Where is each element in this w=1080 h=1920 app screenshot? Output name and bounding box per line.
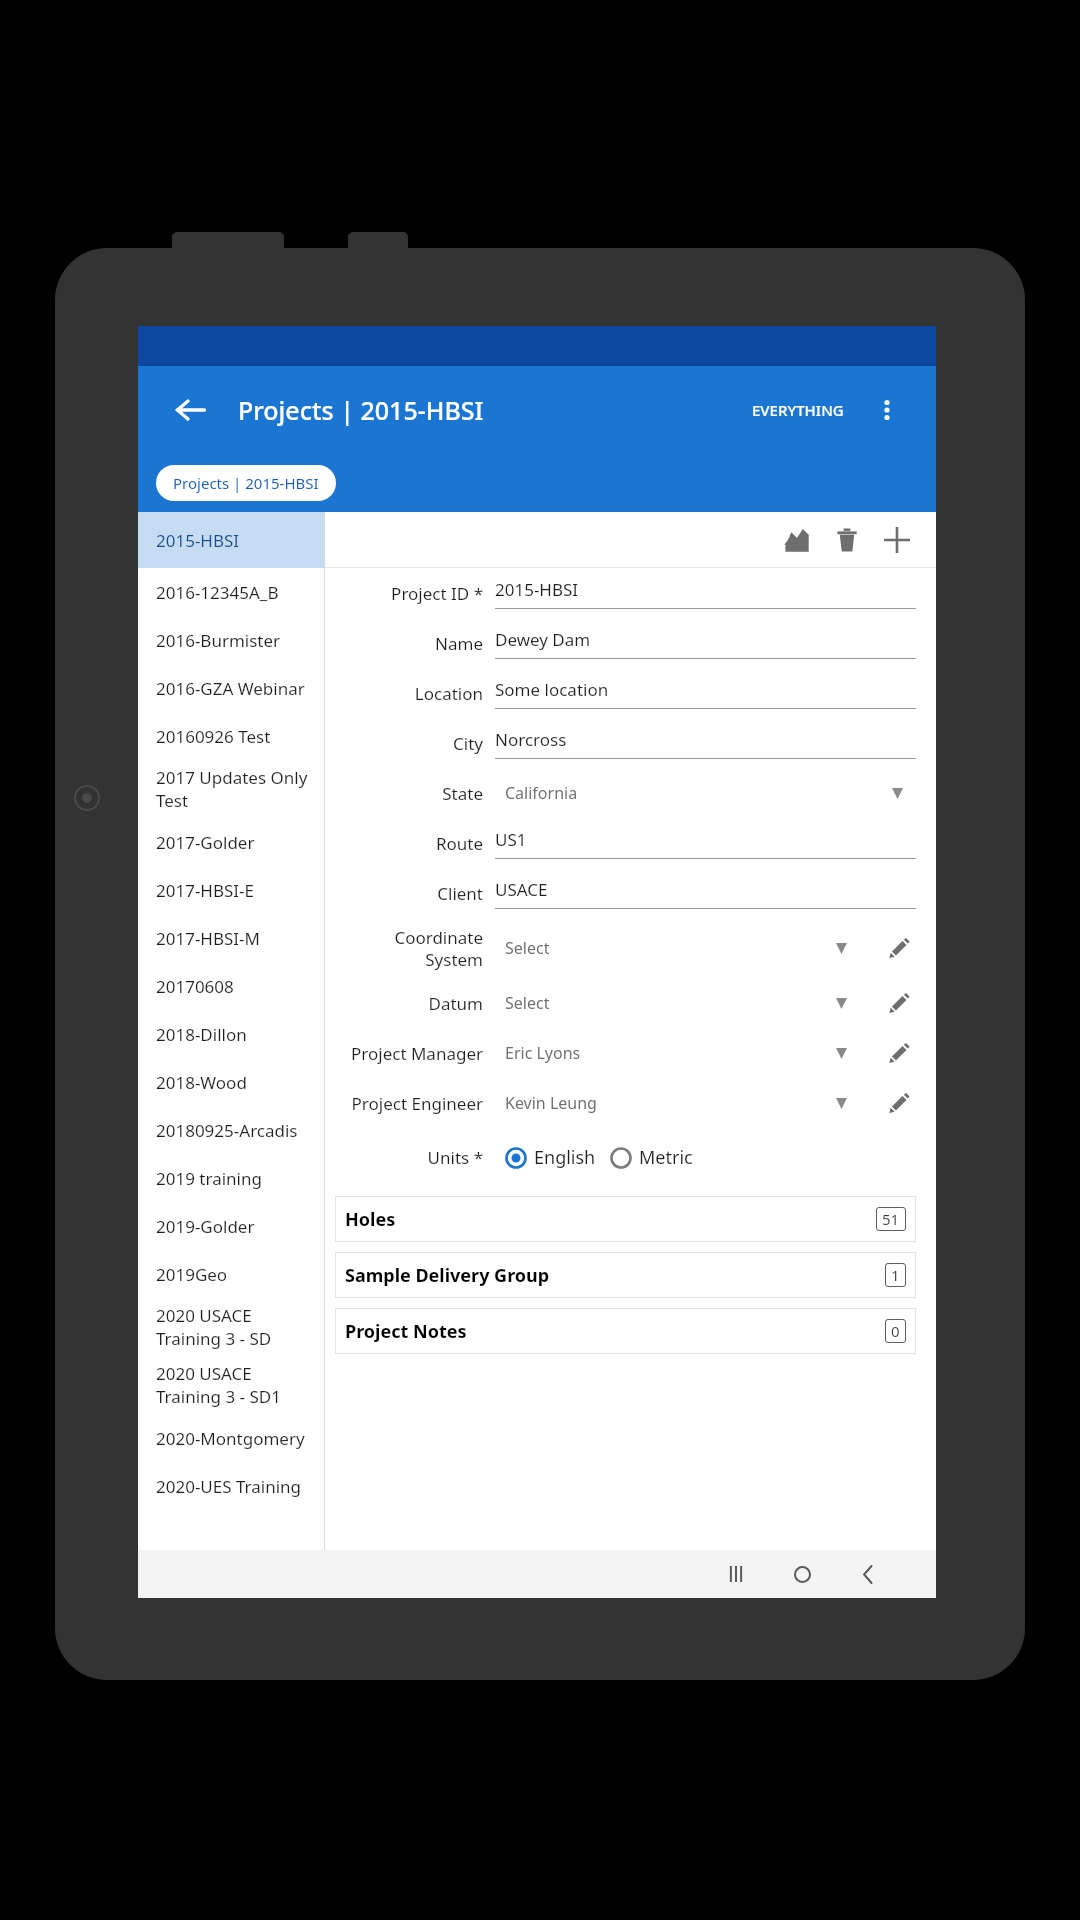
staticText: Location <box>335 682 483 705</box>
staticText: 2020-UES Training <box>156 1475 302 1498</box>
button[interactable]: 2017-HBSI-E <box>138 866 324 914</box>
staticText: 2016-12345A_B <box>156 581 279 604</box>
button[interactable]: Name <box>335 618 916 668</box>
button[interactable]: Delete <box>822 515 872 565</box>
staticText: 2018-Dillon <box>156 1023 247 1046</box>
button[interactable]: 2016-GZA Webinar <box>138 664 324 712</box>
staticText: Some location <box>495 678 609 701</box>
staticText: Project Manager <box>335 1042 483 1065</box>
staticText: 2017 Updates Only Test <box>156 766 316 812</box>
staticText: US1 <box>495 828 527 851</box>
button[interactable]: 2019Geo <box>138 1250 324 1298</box>
staticText: Project ID * <box>335 582 483 605</box>
button[interactable]: Edit Project Manager <box>882 1036 916 1070</box>
button[interactable]: Edit Project Engineer <box>882 1086 916 1120</box>
button[interactable]: 2017-HBSI-M <box>138 914 324 962</box>
staticText: 2018-Wood <box>156 1071 247 1094</box>
button[interactable]: 2015-HBSI <box>138 512 324 568</box>
button[interactable]: 2019 training <box>138 1154 324 1202</box>
button[interactable]: Recents <box>716 1554 756 1594</box>
staticText: 2019Geo <box>156 1263 228 1286</box>
staticText: Sample Delivery Group <box>345 1263 550 1288</box>
button[interactable]: EVERYTHING <box>746 390 850 430</box>
button[interactable]: Project ID * <box>335 568 916 618</box>
staticText: Name <box>335 632 483 655</box>
button[interactable]: English <box>505 1145 596 1170</box>
staticText: Dewey Dam <box>495 628 591 651</box>
button[interactable]: Coordinate System <box>335 918 916 978</box>
button[interactable]: 2020 USACE Training 3 - SD <box>138 1298 324 1356</box>
button[interactable]: Route <box>335 818 916 868</box>
staticText: Units * <box>335 1146 483 1169</box>
button[interactable]: Location <box>335 668 916 718</box>
button[interactable]: Project Notes <box>335 1308 916 1354</box>
staticText: Coordinate System <box>335 926 483 971</box>
staticText: English <box>534 1145 596 1170</box>
staticText: 20170608 <box>156 975 234 998</box>
staticText: 20160926 Test <box>156 725 271 748</box>
button[interactable]: 2019-Golder <box>138 1202 324 1250</box>
staticText: Eric Lyons <box>505 1042 830 1064</box>
button[interactable]: Project Manager <box>335 1028 916 1078</box>
staticText: 2019-Golder <box>156 1215 255 1238</box>
button[interactable]: 2018-Wood <box>138 1058 324 1106</box>
button[interactable]: City <box>335 718 916 768</box>
staticText: Client <box>335 882 483 905</box>
button[interactable]: 2016-12345A_B <box>138 568 324 616</box>
staticText: 20180925-Arcadis <box>156 1119 298 1142</box>
button[interactable]: 2020-Montgomery <box>138 1414 324 1462</box>
button[interactable]: More options <box>864 387 910 433</box>
staticText: Holes <box>345 1207 396 1232</box>
button[interactable]: 2017 Updates Only Test <box>138 760 324 818</box>
staticText: Projects | 2015-HBSI <box>173 473 319 493</box>
button[interactable]: State <box>335 768 916 818</box>
button[interactable]: Holes <box>335 1196 916 1242</box>
button[interactable]: Projects | 2015-HBSI <box>156 465 336 501</box>
staticText: Kevin Leung <box>505 1092 830 1114</box>
button[interactable]: Project Engineer <box>335 1078 916 1128</box>
button[interactable]: Datum <box>335 978 916 1028</box>
staticText: Select <box>505 937 830 959</box>
button[interactable]: Sample Delivery Group <box>335 1252 916 1298</box>
staticText: 2015-HBSI <box>495 578 579 601</box>
button[interactable]: Edit Coordinate System <box>882 931 916 965</box>
button[interactable]: 2017-Golder <box>138 818 324 866</box>
staticText: 51 <box>882 1209 900 1229</box>
staticText: 1 <box>891 1265 900 1285</box>
staticText: Norcross <box>495 728 567 751</box>
button[interactable]: 20180925-Arcadis <box>138 1106 324 1154</box>
staticText: City <box>335 732 483 755</box>
staticText: 2016-Burmister <box>156 629 281 652</box>
staticText: 2017-HBSI-E <box>156 879 255 902</box>
button[interactable]: Back <box>164 383 218 437</box>
staticText: 2020 USACE Training 3 - SD1 <box>156 1362 316 1408</box>
staticText: Select <box>505 992 830 1014</box>
staticText: 2017-Golder <box>156 831 255 854</box>
button[interactable]: Client <box>335 868 916 918</box>
staticText: 0 <box>891 1321 900 1341</box>
button[interactable]: Add <box>872 515 922 565</box>
staticText: 2020 USACE Training 3 - SD <box>156 1304 316 1350</box>
button[interactable]: 2020-UES Training <box>138 1462 324 1510</box>
staticText: Projects | 2015-HBSI <box>238 393 484 427</box>
button[interactable]: 2016-Burmister <box>138 616 324 664</box>
staticText: USACE <box>495 878 548 901</box>
staticText: EVERYTHING <box>752 400 844 420</box>
staticText: 2015-HBSI <box>156 529 240 552</box>
staticText: 2016-GZA Webinar <box>156 677 305 700</box>
staticText: 2019 training <box>156 1167 262 1190</box>
button[interactable]: Edit Datum <box>882 986 916 1020</box>
staticText: Project Engineer <box>335 1092 483 1115</box>
button[interactable]: 2018-Dillon <box>138 1010 324 1058</box>
button[interactable]: Metric <box>610 1145 693 1170</box>
button[interactable]: 2020 USACE Training 3 - SD1 <box>138 1356 324 1414</box>
staticText: Project Notes <box>345 1319 467 1344</box>
button[interactable]: 20160926 Test <box>138 712 324 760</box>
button[interactable]: Home <box>782 1554 822 1594</box>
staticText: Metric <box>639 1145 693 1170</box>
button[interactable]: Chart <box>772 515 822 565</box>
staticText: 2017-HBSI-M <box>156 927 261 950</box>
staticText: California <box>505 782 886 804</box>
button[interactable]: 20170608 <box>138 962 324 1010</box>
button[interactable]: Back <box>848 1554 888 1594</box>
